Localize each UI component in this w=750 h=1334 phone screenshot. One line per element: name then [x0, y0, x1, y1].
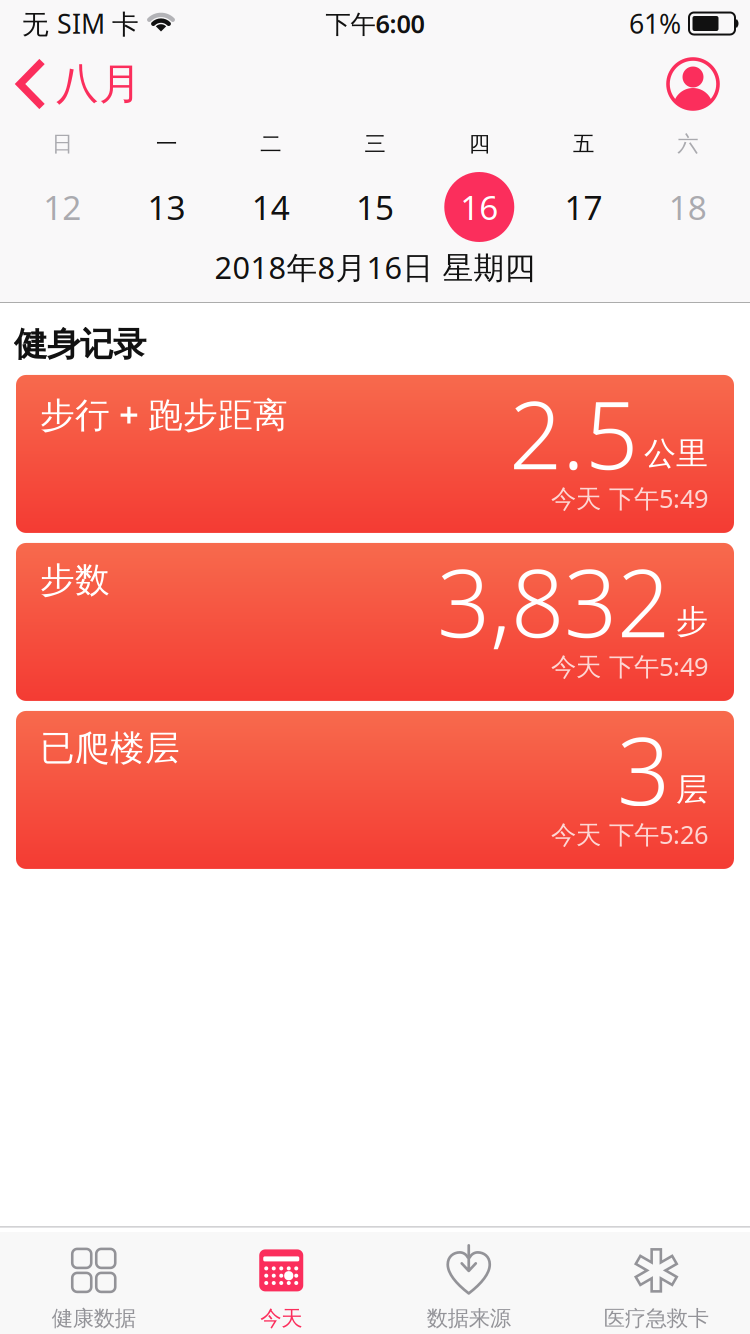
staticText: 3,832	[437, 539, 670, 663]
staticText: 健身记录	[14, 324, 146, 365]
button[interactable]: 已爬楼层	[16, 711, 734, 869]
staticText: 公里	[644, 434, 708, 473]
staticText: 61%	[629, 6, 681, 41]
staticText: 六	[677, 131, 698, 157]
staticText: 3	[617, 707, 670, 831]
staticText: 数据来源	[427, 1305, 511, 1332]
button[interactable]: 12	[10, 185, 114, 229]
button[interactable]: 15	[323, 185, 427, 229]
staticText: 今天 下午5:49	[551, 481, 708, 515]
staticText: 下午6:00	[325, 7, 424, 40]
staticText: 今天 下午5:26	[551, 817, 708, 851]
button[interactable]: 13	[114, 185, 219, 229]
button[interactable]: 14	[219, 185, 323, 229]
staticText: 今天	[260, 1305, 302, 1332]
staticText: 二	[260, 131, 281, 157]
staticText: 步	[676, 602, 708, 641]
staticText: 12	[43, 185, 81, 229]
staticText: 步行 + 跑步距离	[40, 391, 288, 437]
button[interactable]: 数据来源	[375, 1247, 562, 1332]
button[interactable]: 八月	[16, 58, 142, 110]
button[interactable]: 18	[636, 185, 740, 229]
staticText: 2.5	[509, 371, 638, 495]
staticText: 13	[147, 185, 185, 229]
button[interactable]: 16	[427, 172, 531, 242]
staticText: 17	[565, 185, 603, 229]
staticText: 已爬楼层	[40, 727, 180, 769]
staticText: 无 SIM 卡	[22, 6, 139, 41]
staticText: 16	[460, 185, 498, 229]
staticText: 健康数据	[52, 1305, 136, 1332]
button[interactable]: 步行 + 跑步距离	[16, 375, 734, 533]
staticText: 医疗急救卡	[604, 1305, 709, 1332]
button[interactable]: 医疗急救卡	[562, 1247, 750, 1332]
staticText: 三	[364, 131, 385, 157]
staticText: 四	[469, 131, 490, 157]
staticText: 14	[252, 185, 290, 229]
staticText: 五	[573, 131, 594, 157]
button[interactable]: 17	[531, 185, 636, 229]
button[interactable]	[668, 59, 718, 109]
staticText: 15	[356, 185, 394, 229]
staticText: 步数	[40, 559, 110, 601]
staticText: 18	[669, 185, 707, 229]
staticText: 今天 下午5:49	[551, 649, 708, 683]
staticText: 日	[52, 131, 73, 157]
staticText: 层	[676, 770, 708, 809]
staticText: 2018年8月16日 星期四	[214, 247, 535, 287]
staticText: 一	[156, 131, 177, 157]
button[interactable]: 健康数据	[0, 1247, 187, 1332]
button[interactable]: 今天	[187, 1247, 375, 1332]
button[interactable]: 步数	[16, 543, 734, 701]
staticText: 八月	[56, 58, 142, 110]
